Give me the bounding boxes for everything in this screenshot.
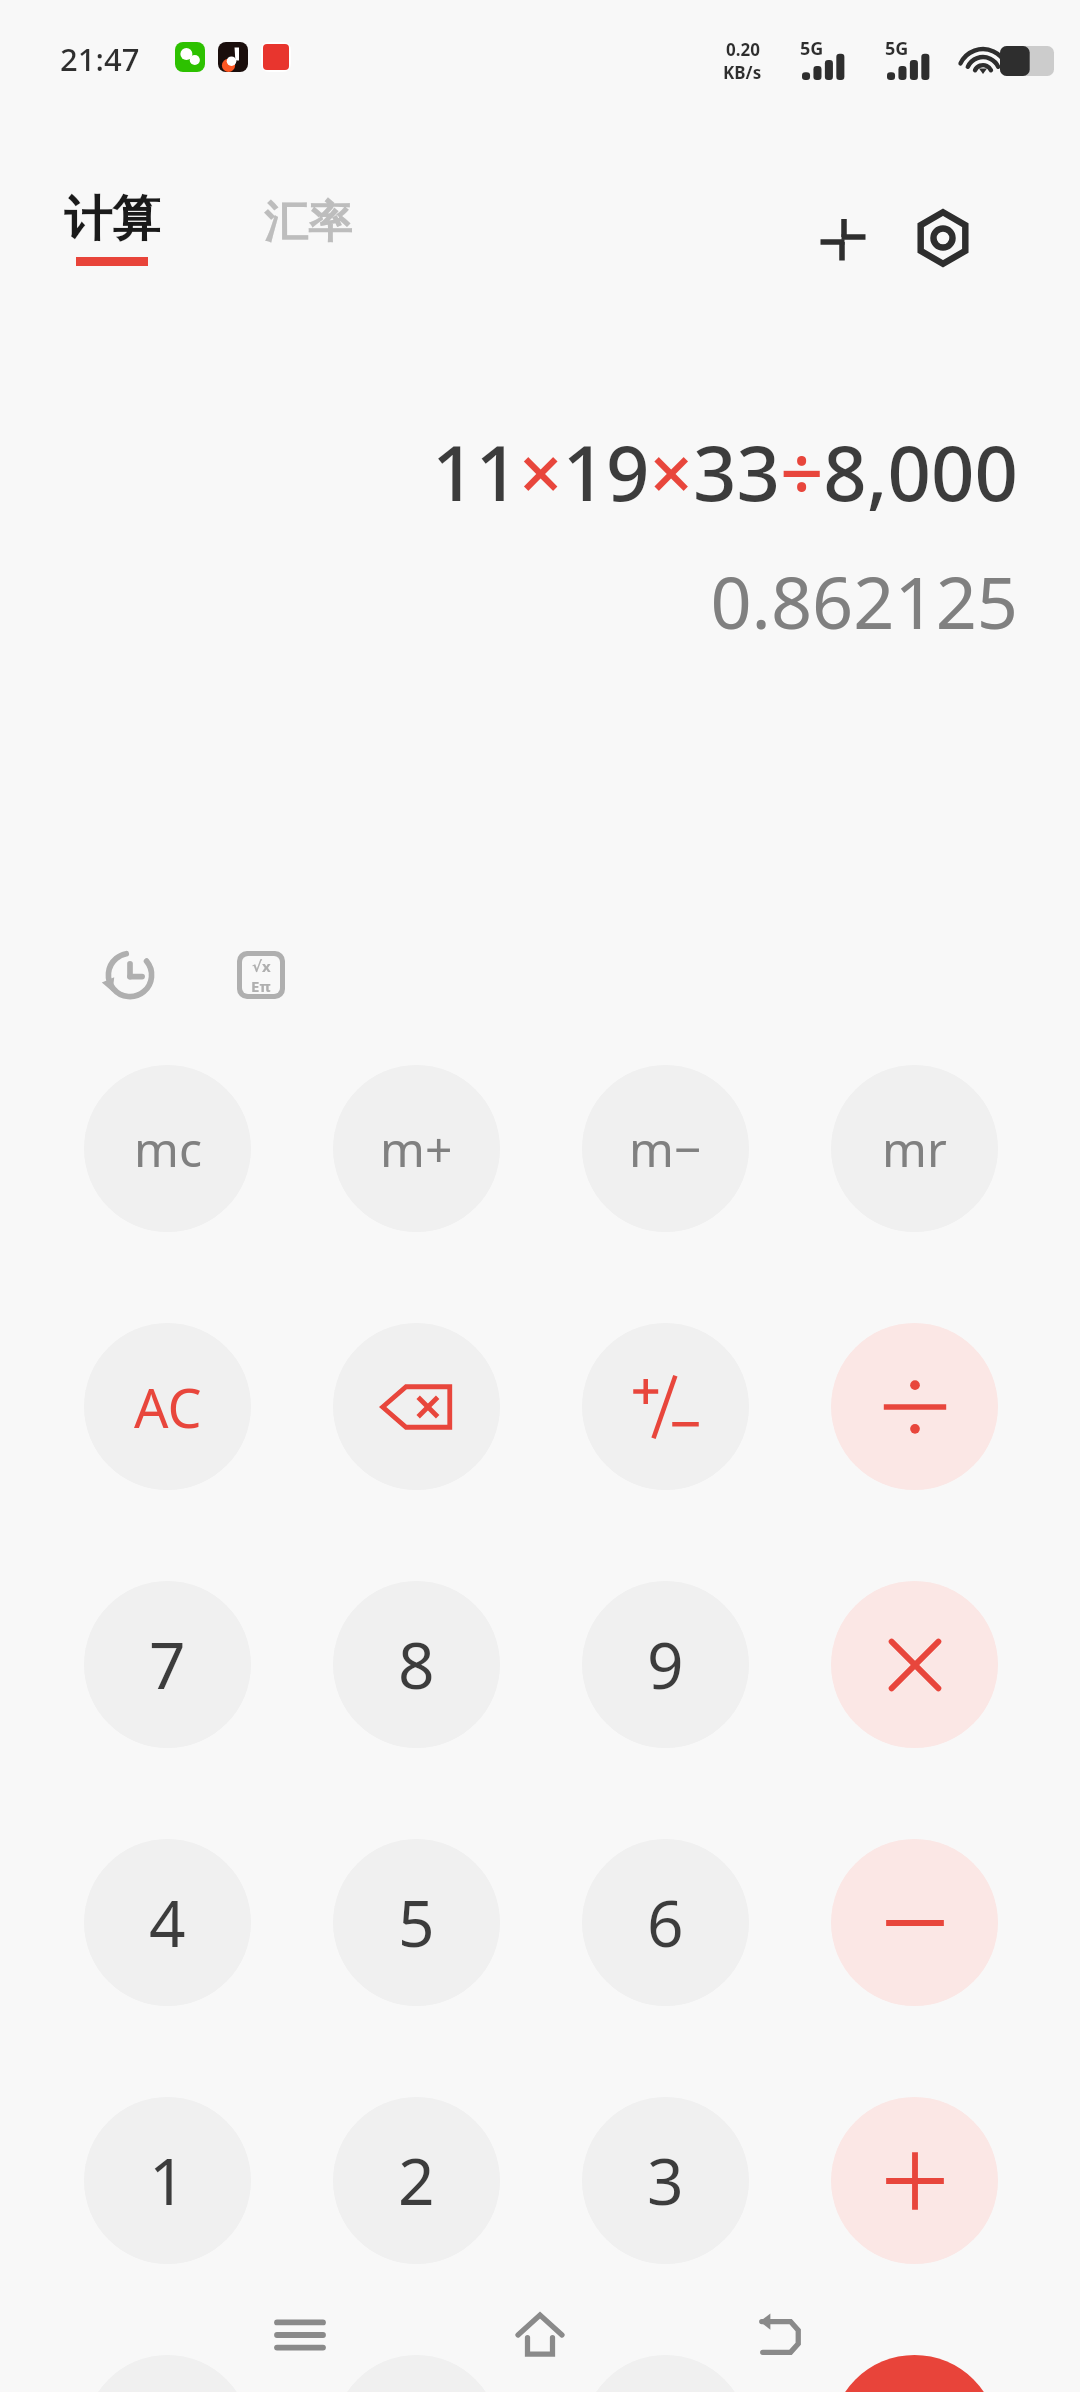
staticText: 21:47 (60, 38, 140, 80)
button[interactable]: 2 (333, 2097, 500, 2264)
button[interactable]: 计算 (58, 185, 166, 270)
button[interactable]: 9 (582, 1581, 749, 1748)
staticText: 4 (149, 1879, 186, 1966)
staticText: mc (134, 1116, 202, 1181)
staticText: 汇率 (264, 195, 352, 250)
button[interactable]: Plus minus (582, 1323, 749, 1490)
button[interactable]: Minus (831, 1839, 998, 2006)
staticText: 计算 (64, 189, 160, 249)
button[interactable]: 1 (84, 2097, 251, 2264)
staticText: 0.20 (726, 38, 760, 61)
button[interactable]: Scientific (216, 930, 306, 1020)
staticText: 1 (149, 2137, 186, 2224)
button[interactable]: AC (84, 1323, 251, 1490)
staticText: 8 (398, 1621, 435, 1708)
staticText: 3 (647, 2137, 684, 2224)
button[interactable]: Settings (900, 195, 986, 281)
button[interactable]: Divide (831, 1323, 998, 1490)
staticText: mr (882, 1116, 947, 1181)
staticText: KB/s (723, 61, 762, 84)
button[interactable]: Collapse (800, 195, 886, 281)
button[interactable]: Recents (240, 2290, 360, 2380)
staticText: 6 (647, 1879, 684, 1966)
button[interactable]: m− (582, 1065, 749, 1232)
button[interactable]: % (84, 2355, 251, 2392)
button[interactable]: 0 (333, 2355, 500, 2392)
button[interactable]: . (582, 2355, 749, 2392)
button[interactable]: Multiply (831, 1581, 998, 1748)
staticText: m+ (380, 1116, 453, 1181)
button[interactable]: Plus (831, 2097, 998, 2264)
button[interactable]: Backspace (333, 1323, 500, 1490)
staticText: 0.862125 (710, 552, 1018, 650)
staticText: 5G (885, 36, 909, 61)
button[interactable]: Back (720, 2290, 840, 2380)
button[interactable]: 6 (582, 1839, 749, 2006)
button[interactable]: mr (831, 1065, 998, 1232)
staticText: 5G (800, 36, 824, 61)
staticText: 11×19×33÷8,000 (432, 420, 1018, 524)
staticText: AC (134, 1370, 202, 1444)
button[interactable]: History (85, 930, 175, 1020)
staticText: Eπ (251, 976, 271, 994)
button[interactable]: Home (480, 2290, 600, 2380)
button[interactable]: 8 (333, 1581, 500, 1748)
button[interactable]: 3 (582, 2097, 749, 2264)
button[interactable]: 汇率 (258, 191, 358, 254)
staticText: m− (629, 1116, 702, 1181)
button[interactable]: Equals (831, 2355, 998, 2392)
button[interactable]: 4 (84, 1839, 251, 2006)
staticText: √x (252, 956, 271, 976)
button[interactable]: 7 (84, 1581, 251, 1748)
staticText: 7 (149, 1621, 186, 1708)
button[interactable]: mc (84, 1065, 251, 1232)
button[interactable]: 5 (333, 1839, 500, 2006)
button[interactable]: m+ (333, 1065, 500, 1232)
staticText: 2 (398, 2137, 435, 2224)
staticText: 5 (398, 1879, 435, 1966)
staticText: 9 (647, 1621, 684, 1708)
